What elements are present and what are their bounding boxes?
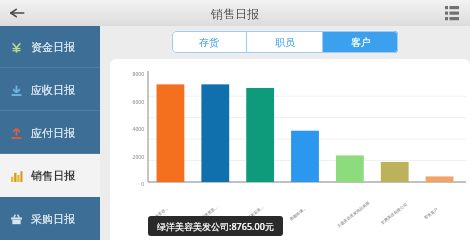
button[interactable]: 存货: [172, 31, 246, 53]
staticText: 客户: [351, 36, 371, 49]
button[interactable]: 应收日报: [0, 68, 100, 111]
staticText: 8000: [132, 71, 144, 78]
staticText: 绿洋美容美…: [243, 204, 265, 223]
staticText: 欣腾美容有限公司: [380, 202, 408, 225]
button[interactable]: 职员: [247, 31, 322, 53]
staticText: 天霸美容美发用品有限公…: [336, 198, 373, 229]
staticText: 资金日报: [31, 40, 75, 54]
staticText: 销售日报: [211, 6, 259, 21]
staticText: 6000: [132, 99, 144, 106]
staticText: 4000: [132, 126, 144, 133]
staticText: 云南美容…: [151, 205, 169, 222]
button[interactable]: 客户: [323, 31, 398, 53]
staticText: 应付日报: [31, 126, 75, 140]
staticText: 2000: [132, 154, 144, 161]
staticText: 兰斯堡黑客…: [197, 204, 219, 223]
staticText: 职员: [275, 36, 295, 49]
button[interactable]: Menu: [440, 1, 464, 25]
staticText: 采购日报: [31, 212, 75, 226]
button[interactable]: 销售日报: [0, 154, 100, 197]
staticText: 绿洋美容美发公司:8765.00元: [157, 220, 274, 232]
button[interactable]: 资金日报: [0, 26, 100, 68]
staticText: 零售客户: [423, 207, 439, 220]
staticText: 存货: [199, 36, 219, 49]
staticText: 0: [141, 181, 144, 188]
staticText: 销售日报: [31, 169, 75, 183]
staticText: 应收日报: [31, 83, 75, 97]
staticText: 南都哈佛…: [289, 205, 307, 222]
button[interactable]: 采购日报: [0, 197, 100, 240]
button[interactable]: 应付日报: [0, 111, 100, 154]
button[interactable]: Back: [4, 0, 30, 26]
